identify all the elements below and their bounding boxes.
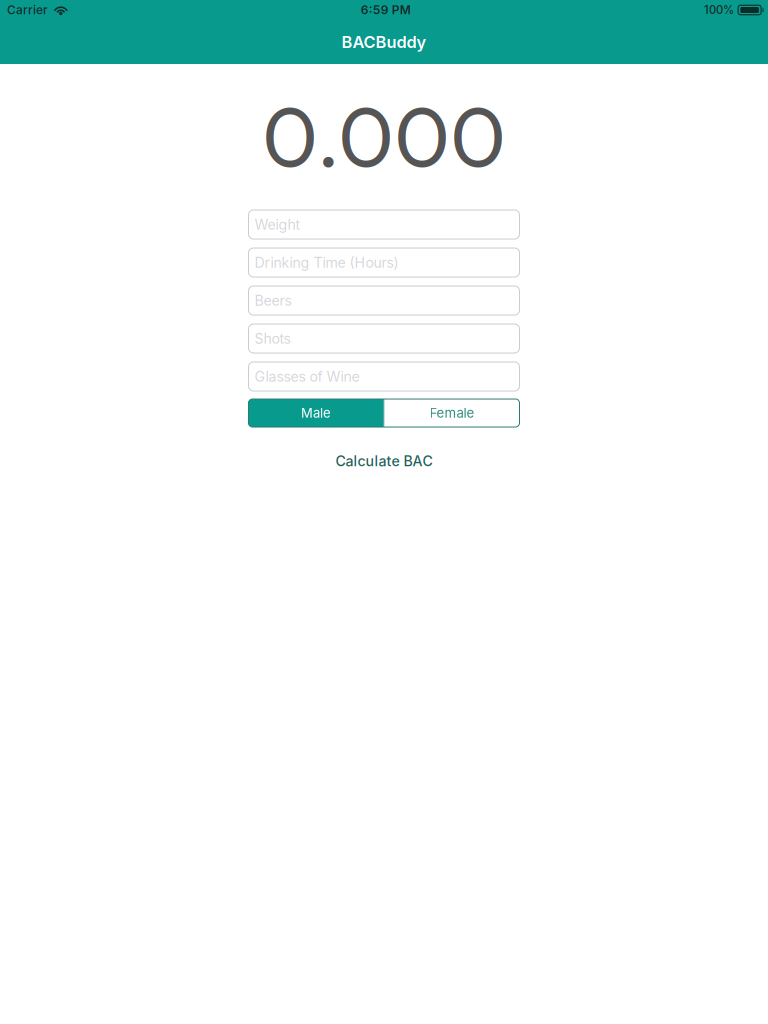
- button[interactable]: Male: [248, 399, 383, 427]
- staticText: Female: [429, 405, 474, 421]
- staticText: 6:59 PM: [361, 3, 411, 17]
- button[interactable]: Drinking Time (Hours): [248, 248, 519, 277]
- staticText: Beers: [254, 292, 291, 309]
- staticText: Shots: [254, 330, 290, 347]
- staticText: Carrier: [7, 3, 48, 17]
- button[interactable]: Female: [384, 399, 519, 427]
- staticText: Drinking Time (Hours): [254, 254, 398, 271]
- staticText: Glasses of Wine: [254, 368, 359, 385]
- button[interactable]: Beers: [248, 286, 519, 315]
- button[interactable]: Weight: [248, 210, 519, 239]
- staticText: Calculate BAC: [335, 452, 432, 469]
- button[interactable]: Shots: [248, 324, 519, 353]
- staticText: BACBuddy: [341, 32, 426, 52]
- staticText: Male: [301, 405, 331, 421]
- staticText: 0.000: [262, 81, 506, 189]
- staticText: 100%: [704, 3, 734, 17]
- staticText: Weight: [254, 216, 300, 233]
- button[interactable]: Glasses of Wine: [248, 362, 519, 391]
- button[interactable]: Calculate BAC: [248, 444, 519, 478]
